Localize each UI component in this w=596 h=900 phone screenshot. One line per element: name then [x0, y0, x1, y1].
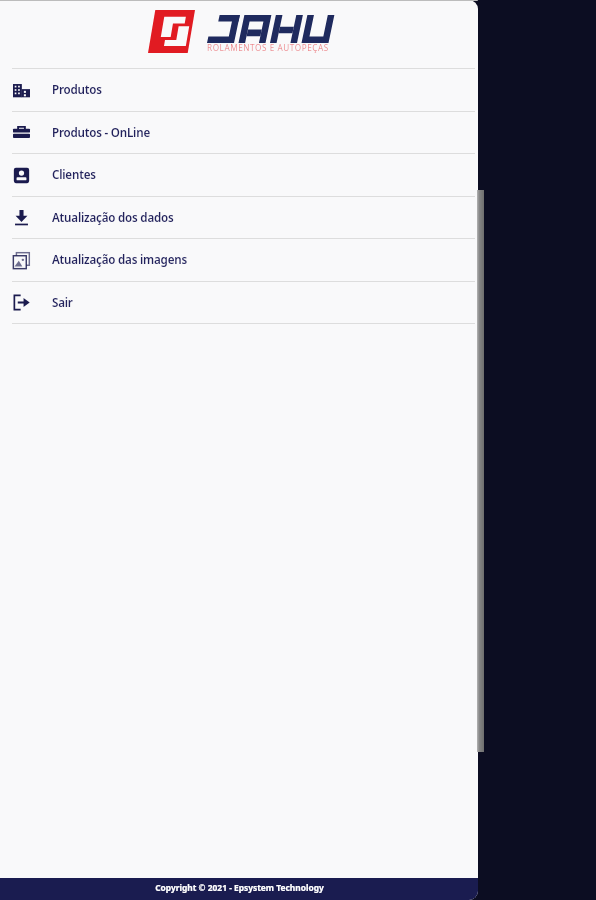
staticText: Sair: [52, 295, 73, 311]
button[interactable]: Scroll bar: [477, 190, 484, 752]
button[interactable]: Produtos: [0, 69, 478, 111]
staticText: Atualização dos dados: [52, 210, 174, 226]
button[interactable]: Clientes: [0, 154, 478, 196]
staticText: Produtos - OnLine: [52, 125, 150, 141]
button[interactable]: Produtos - OnLine: [0, 112, 478, 153]
staticText: Atualização das imagens: [52, 252, 187, 268]
staticText: Copyright © 2021 - Epsystem Technology: [155, 882, 324, 893]
staticText: Clientes: [52, 167, 96, 183]
button[interactable]: Sair: [0, 282, 478, 323]
button[interactable]: Atualização dos dados: [0, 197, 478, 238]
staticText: ROLAMENTOS E AUTOPEÇAS: [207, 42, 329, 53]
button[interactable]: Atualização das imagens: [0, 239, 478, 281]
staticText: Produtos: [52, 82, 102, 98]
